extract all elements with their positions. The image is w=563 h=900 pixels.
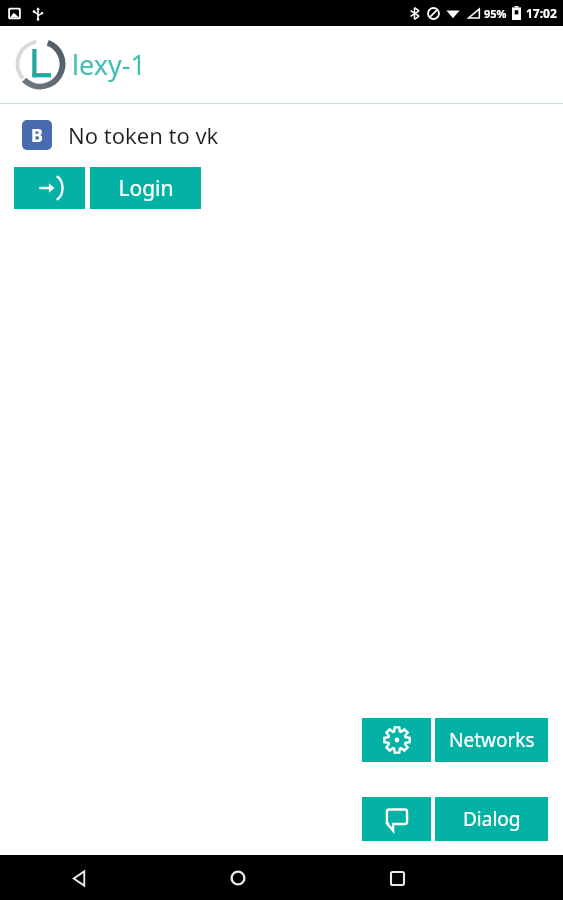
staticText: B — [31, 123, 43, 148]
button[interactable]: Back — [59, 858, 99, 898]
button[interactable]: Dialog — [435, 797, 548, 841]
button[interactable]: Recent apps — [377, 858, 417, 898]
button[interactable]: Networks — [435, 718, 548, 762]
button[interactable]: Login with arrow — [14, 167, 85, 209]
staticText: Login — [118, 174, 174, 203]
button[interactable]: Networks settings — [362, 718, 431, 762]
staticText: Networks — [449, 727, 535, 753]
staticText: No token to vk — [68, 120, 219, 150]
button[interactable]: Login — [90, 167, 201, 209]
staticText: 17:02 — [526, 5, 557, 21]
staticText: 95% — [484, 6, 507, 21]
staticText: Dialog — [463, 806, 521, 832]
button[interactable]: Open dialog chat — [362, 797, 431, 841]
staticText: lexy-1 — [72, 46, 146, 83]
button[interactable]: Home — [218, 858, 258, 898]
